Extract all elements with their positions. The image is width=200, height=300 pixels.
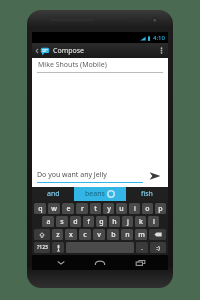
button[interactable]: j	[122, 216, 133, 227]
staticText: r	[81, 204, 84, 214]
staticText: e	[66, 204, 71, 214]
button[interactable]: :)	[150, 242, 166, 253]
button[interactable]: Send	[147, 168, 163, 184]
staticText: c	[83, 230, 87, 240]
staticText: beans	[85, 189, 105, 199]
button[interactable]: p	[155, 203, 166, 214]
button[interactable]: c	[79, 229, 91, 240]
button[interactable]: ?123	[34, 242, 50, 253]
button[interactable]: Recent apps	[129, 255, 151, 270]
staticText: n	[125, 230, 130, 240]
staticText: t	[94, 204, 97, 214]
button[interactable]: g	[96, 216, 107, 227]
button[interactable]: e	[62, 203, 74, 214]
button[interactable]: and	[32, 187, 74, 201]
staticText: d	[73, 217, 78, 227]
staticText: z	[56, 230, 60, 240]
staticText: 4:10	[153, 34, 165, 42]
staticText: w	[51, 204, 57, 214]
button[interactable]: h	[109, 216, 120, 227]
staticText: p	[158, 204, 163, 214]
staticText: l	[153, 217, 155, 227]
button[interactable]: x	[65, 229, 77, 240]
button[interactable]: w	[48, 203, 60, 214]
staticText: :)	[156, 244, 160, 252]
button[interactable]: .	[136, 242, 148, 253]
button[interactable]: i	[129, 203, 140, 214]
staticText: fish	[141, 189, 153, 199]
button[interactable]: d	[70, 216, 81, 227]
button[interactable]: l	[148, 216, 159, 227]
staticText: j	[127, 217, 129, 227]
button[interactable]: y	[103, 203, 114, 214]
button[interactable]: s	[56, 216, 68, 227]
button[interactable]: Home	[89, 255, 111, 270]
staticText: .	[141, 244, 143, 252]
staticText: and	[47, 189, 60, 199]
button[interactable]: Navigate up	[34, 46, 51, 56]
button[interactable]: m	[135, 229, 147, 240]
button[interactable]: b	[107, 229, 119, 240]
staticText: s	[60, 217, 64, 227]
button[interactable]: Hide keyboard	[50, 255, 72, 270]
staticText: u	[119, 204, 124, 214]
staticText: q	[38, 204, 43, 214]
button[interactable]: o	[142, 203, 153, 214]
staticText: Do you want any Jelly	[37, 170, 107, 180]
button[interactable]: r	[76, 203, 88, 214]
button[interactable]: Voice input	[52, 242, 64, 253]
button[interactable]: t	[90, 203, 101, 214]
button[interactable]: u	[116, 203, 127, 214]
button[interactable]: a	[42, 216, 54, 227]
staticText: x	[69, 230, 73, 240]
button[interactable]: n	[121, 229, 133, 240]
button[interactable]: f	[83, 216, 94, 227]
staticText: g	[99, 217, 104, 227]
button[interactable]: k	[135, 216, 146, 227]
button[interactable]: Delete	[149, 229, 166, 240]
button[interactable]: Shift	[34, 229, 50, 240]
staticText: Mike Shouts (Mobile)	[38, 60, 107, 70]
staticText: y	[107, 204, 111, 214]
staticText: Compose	[53, 46, 85, 56]
staticText: a	[46, 217, 51, 227]
button[interactable]: More options	[156, 43, 166, 58]
button[interactable]: beans	[74, 187, 126, 201]
staticText: h	[112, 217, 117, 227]
button[interactable]: fish	[126, 187, 168, 201]
staticText: b	[111, 230, 116, 240]
staticText: ?123	[37, 244, 48, 251]
button[interactable]: Mike Shouts (Mobile)	[32, 58, 168, 72]
staticText: i	[134, 204, 136, 214]
staticText: m	[138, 230, 145, 240]
button[interactable]: z	[52, 229, 63, 240]
staticText: f	[87, 217, 90, 227]
staticText: o	[145, 204, 150, 214]
button[interactable]: Do you want any Jelly	[37, 170, 143, 183]
button[interactable]: q	[34, 203, 46, 214]
staticText: k	[139, 217, 143, 227]
button[interactable]: v	[93, 229, 105, 240]
staticText: v	[97, 230, 101, 240]
